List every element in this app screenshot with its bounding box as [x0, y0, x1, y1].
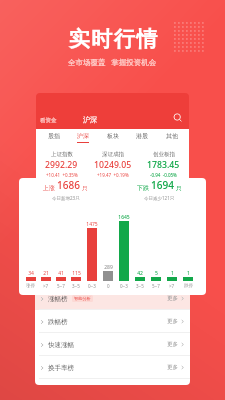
staticText: 换手率榜 — [48, 364, 74, 372]
staticText: 289 — [104, 264, 113, 271]
staticText: 1 — [171, 270, 174, 277]
staticText: 下跌 — [137, 184, 149, 192]
button[interactable]: 板块 — [101, 129, 125, 145]
staticText: -0.94 -0.05% — [150, 172, 177, 178]
staticText: 5~7 — [57, 283, 65, 289]
button[interactable]: 上涨 — [19, 178, 112, 201]
staticText: 实时行情 — [68, 26, 158, 52]
button[interactable]: 股指 — [42, 129, 66, 145]
staticText: >7 — [169, 283, 175, 289]
staticText: 更多 — [167, 364, 178, 371]
button[interactable]: 沪深 — [71, 129, 95, 145]
staticText: 115 — [72, 270, 81, 277]
staticText: 更多 — [167, 318, 178, 325]
button[interactable]: Search — [172, 112, 184, 124]
button[interactable]: 港股 — [130, 129, 154, 145]
staticText: 2992.29 — [45, 159, 78, 171]
staticText: 跌幅榜 — [48, 318, 68, 326]
staticText: 创业板指 — [153, 151, 175, 158]
button[interactable]: 涨幅榜 — [35, 287, 190, 310]
button[interactable]: 换手率榜 — [35, 356, 190, 379]
staticText: 1686 — [57, 178, 80, 192]
staticText: 3~5 — [136, 283, 144, 289]
staticText: 41 — [58, 270, 64, 277]
staticText: 涨幅榜 — [48, 295, 68, 303]
staticText: 今日减少121只 — [144, 195, 175, 201]
staticText: 全市场覆盖 掌握投资机会 — [68, 57, 157, 67]
button[interactable]: 深证成指 — [87, 151, 138, 178]
staticText: 0 — [107, 283, 110, 289]
staticText: 深证成指 — [102, 151, 124, 158]
staticText: >7 — [43, 283, 49, 289]
staticText: 快速涨幅 — [48, 341, 74, 349]
staticText: 智能分析 — [74, 296, 91, 301]
staticText: 1694 — [151, 178, 174, 192]
staticText: 只 — [176, 185, 182, 192]
button[interactable]: 其他 — [160, 129, 184, 145]
staticText: 沪深 — [77, 132, 89, 140]
staticText: +19.47 +0.19% — [97, 172, 129, 178]
staticText: 港股 — [136, 132, 148, 140]
staticText: 只 — [82, 185, 88, 192]
staticText: 跌停 — [184, 283, 193, 289]
staticText: 涨停 — [26, 283, 35, 289]
staticText: 5~7 — [152, 283, 160, 289]
staticText: 其他 — [166, 132, 178, 140]
button[interactable]: 下跌 — [112, 178, 206, 201]
staticText: 1475 — [86, 221, 98, 228]
staticText: 42 — [137, 270, 143, 277]
staticText: 5 — [155, 270, 158, 277]
button[interactable]: 创业板指 — [138, 151, 189, 178]
button[interactable]: 上证指数 — [36, 151, 87, 178]
button[interactable]: 沪深 — [83, 115, 97, 124]
button[interactable]: 跌幅榜 — [35, 310, 190, 333]
staticText: 0~3 — [120, 283, 128, 289]
staticText: 更多 — [167, 341, 178, 348]
staticText: 股指 — [48, 132, 60, 140]
staticText: 21 — [43, 270, 49, 277]
staticText: 今日新增23只 — [52, 195, 80, 201]
button[interactable]: 快速涨幅 — [35, 333, 190, 356]
staticText: 10249.05 — [94, 159, 132, 171]
staticText: +10.41 +0.35% — [46, 172, 78, 178]
staticText: 1645 — [118, 214, 130, 221]
staticText: 更多 — [167, 295, 178, 302]
button[interactable]: 看资金 — [40, 117, 57, 124]
staticText: 0~3 — [88, 283, 96, 289]
staticText: 上涨 — [43, 184, 55, 192]
staticText: 板块 — [107, 132, 119, 140]
staticText: 3~5 — [72, 283, 80, 289]
staticText: 1783.45 — [147, 159, 180, 171]
staticText: 上证指数 — [51, 151, 73, 158]
staticText: 1 — [187, 270, 190, 277]
staticText: 34 — [28, 270, 34, 277]
